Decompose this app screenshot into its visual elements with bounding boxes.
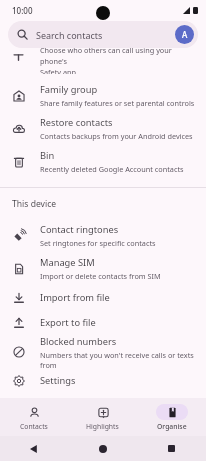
button[interactable]: Import from file [0,285,206,310]
button[interactable]: Back [0,436,68,461]
button[interactable]: Contact ringtones [0,219,206,252]
button[interactable]: Home [68,436,137,461]
button[interactable]: Choose who others can call using your ph… [0,50,206,79]
staticText: A [182,29,188,40]
staticText: Import or delete contacts from SIM [40,271,161,281]
button[interactable]: Restore contacts [0,112,206,145]
button[interactable]: Contacts [0,398,68,436]
button[interactable]: Search contacts [8,21,198,48]
button[interactable]: Organise [137,398,206,436]
button[interactable]: Manage SIM [0,252,206,285]
button[interactable]: Export to file [0,310,206,335]
staticText: Blocked numbers [40,335,117,348]
staticText: Organise [157,422,187,431]
button[interactable]: Settings [0,368,206,393]
staticText: Import from file [40,291,110,304]
staticText: Search contacts [36,29,103,41]
staticText: Contacts [20,422,48,431]
staticText: Manage SIM [40,256,95,269]
staticText: Contacts backups from your Android devic… [40,131,193,141]
button[interactable]: Blocked numbers [0,335,206,368]
staticText: Settings [40,374,76,387]
staticText: 10:00 [12,5,33,16]
staticText: Restore contacts [40,116,113,129]
button[interactable]: Highlights [68,398,137,436]
button[interactable]: Recent apps [137,436,206,461]
staticText: Bin [40,149,55,162]
staticText: Recently deleted Google Account contacts [40,164,184,174]
staticText: Highlights [86,422,119,431]
staticText: This device [12,198,57,210]
staticText: Choose who others can call using your ph… [40,45,196,74]
staticText: Contact ringtones [40,223,119,236]
button[interactable]: Bin [0,145,206,178]
staticText: Set ringtones for specific contacts [40,238,156,248]
staticText: Export to file [40,316,96,329]
button[interactable]: Family group [0,79,206,112]
button[interactable]: Account [175,25,194,44]
staticText: Share family features or set parental co… [40,98,195,108]
staticText: Numbers that you won't receive calls or … [40,350,196,368]
staticText: Family group [40,83,98,96]
